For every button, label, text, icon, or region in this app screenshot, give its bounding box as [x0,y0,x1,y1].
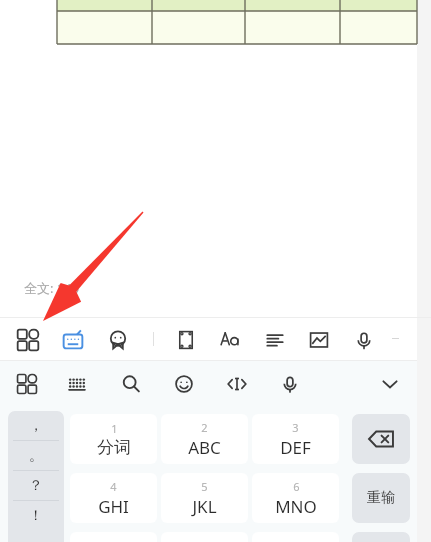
button[interactable]: 1 [70,414,157,464]
staticText: ！ [29,507,43,525]
staticText: 2 [201,420,208,435]
button[interactable]: Search [117,370,145,398]
staticText: 5 [201,479,208,494]
staticText: ， [29,417,43,435]
button[interactable]: Hide keyboard [376,370,404,398]
button[interactable]: Emoji [170,370,198,398]
button[interactable]: Emoji [104,326,132,354]
button[interactable]: Keyboard layout [63,370,91,398]
staticText: 重输 [367,489,395,507]
button[interactable]: Keyboard [59,326,87,354]
button[interactable]: 6 [252,473,339,523]
button[interactable]: Voice input [350,326,378,354]
button[interactable]: Font size [216,326,244,354]
button[interactable]: Insert image [305,326,333,354]
button[interactable]: Panels [13,370,41,398]
button[interactable]: Align [261,326,289,354]
button[interactable]: 5 [161,473,248,523]
staticText: 4 [110,479,117,494]
staticText: 分词 [97,437,131,458]
staticText: ？ [29,477,43,495]
button[interactable]: Panels [14,326,42,354]
staticText: DEF [280,436,311,459]
button[interactable]: 2 [161,414,248,464]
button[interactable]: 。 [8,441,64,470]
staticText: 。 [29,447,43,465]
button[interactable]: ？ [8,471,64,500]
button[interactable]: ， [8,411,64,440]
staticText: ABC [188,436,221,459]
button[interactable]: 3 [252,414,339,464]
staticText: 全文: 140 [24,279,80,297]
staticText: 3 [292,420,299,435]
button[interactable]: Crop [172,326,200,354]
button[interactable]: 重输 [352,473,410,523]
button[interactable]: 4 [70,473,157,523]
staticText: 6 [293,479,300,494]
staticText: MNO [275,495,317,518]
staticText: JKL [192,495,217,518]
button[interactable] [352,532,410,542]
staticText: 1 [111,421,118,436]
button[interactable]: Backspace [352,414,410,464]
button[interactable]: ！ [8,501,64,530]
button[interactable]: Voice input [276,370,304,398]
button[interactable]: Move cursor [223,370,251,398]
staticText: GHI [98,495,129,518]
